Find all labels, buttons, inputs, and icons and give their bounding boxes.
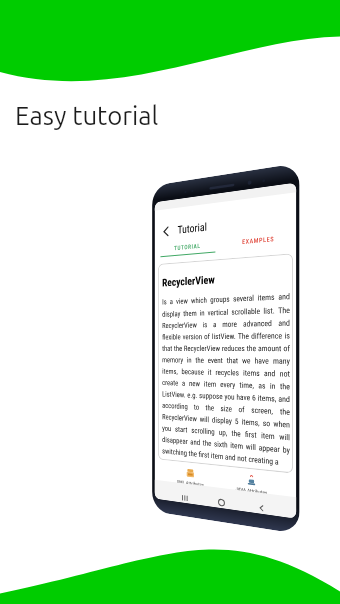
- button[interactable]: XML Attributes: [177, 467, 204, 488]
- staticText: JAVA Attributes: [235, 486, 268, 496]
- button[interactable]: Back: [160, 225, 172, 238]
- button[interactable]: Recent apps: [179, 490, 190, 504]
- staticText: XML Attributes: [177, 479, 204, 488]
- staticText: TUTORIAL: [174, 242, 201, 251]
- staticText: Easy tutorial: [15, 101, 159, 130]
- button[interactable]: RecyclerView: [158, 253, 293, 474]
- button[interactable]: Home: [215, 495, 227, 509]
- button[interactable]: EXAMPLES: [221, 229, 296, 250]
- button[interactable]: TUTORIAL: [155, 237, 221, 256]
- button[interactable]: Back: [255, 500, 267, 515]
- staticText: Is a view which groups several items and…: [162, 292, 290, 467]
- button[interactable]: JAVA Attributes: [235, 474, 268, 496]
- staticText: Tutorial: [178, 221, 207, 236]
- staticText: RecyclerView: [162, 273, 215, 289]
- staticText: EXAMPLES: [242, 235, 274, 245]
